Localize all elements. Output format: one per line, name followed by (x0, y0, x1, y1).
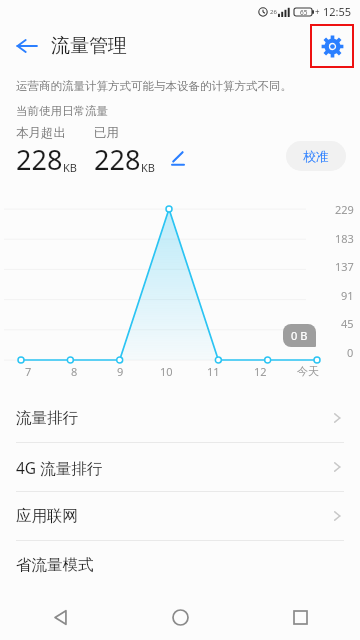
staticText: 流量管理 (51, 34, 127, 58)
button[interactable]: 流量排行 (0, 394, 360, 442)
button[interactable]: Recent apps (240, 594, 360, 640)
staticText: 本月超出 (16, 125, 66, 141)
button[interactable]: Edit (164, 145, 190, 171)
staticText: + (315, 6, 320, 17)
staticText: 183 (335, 231, 354, 246)
staticText: 11 (207, 364, 220, 379)
staticText: 91 (341, 288, 354, 303)
staticText: 省流量模式 (16, 555, 94, 575)
staticText: 65 (300, 8, 308, 17)
staticText: 228 (16, 141, 63, 178)
staticText: 228 (94, 141, 141, 178)
staticText: 4G 流量排行 (16, 457, 103, 478)
staticText: 9 (117, 364, 124, 379)
staticText: 流量排行 (16, 408, 78, 428)
button[interactable]: Settings (310, 24, 354, 68)
button[interactable]: 校准 (286, 141, 346, 171)
button[interactable]: Home (120, 594, 240, 640)
staticText: 应用联网 (16, 506, 78, 526)
staticText: 0 (347, 345, 354, 360)
staticText: KB (63, 160, 77, 175)
staticText: KB (141, 160, 155, 175)
staticText: 137 (335, 259, 354, 274)
staticText: 7 (25, 364, 32, 379)
staticText: 运营商的流量计算方式可能与本设备的计算方式不同。 (16, 79, 292, 93)
staticText: 校准 (303, 148, 329, 164)
staticText: 26 (270, 8, 277, 16)
button[interactable]: 4G 流量排行 (0, 443, 360, 491)
staticText: 已用 (94, 125, 119, 141)
staticText: 10 (160, 364, 173, 379)
staticText: 229 (335, 202, 354, 217)
staticText: 12 (254, 364, 267, 379)
staticText: 12:55 (323, 4, 352, 19)
staticText: 当前使用日常流量 (16, 104, 108, 118)
staticText: 今天 (297, 364, 319, 378)
staticText: 8 (71, 364, 78, 379)
staticText: 45 (341, 316, 354, 331)
button[interactable]: Back (0, 594, 120, 640)
button[interactable]: Back (7, 26, 47, 66)
button[interactable]: 应用联网 (0, 492, 360, 540)
button[interactable]: 省流量模式 (0, 541, 360, 567)
staticText: 0 B (291, 328, 308, 343)
